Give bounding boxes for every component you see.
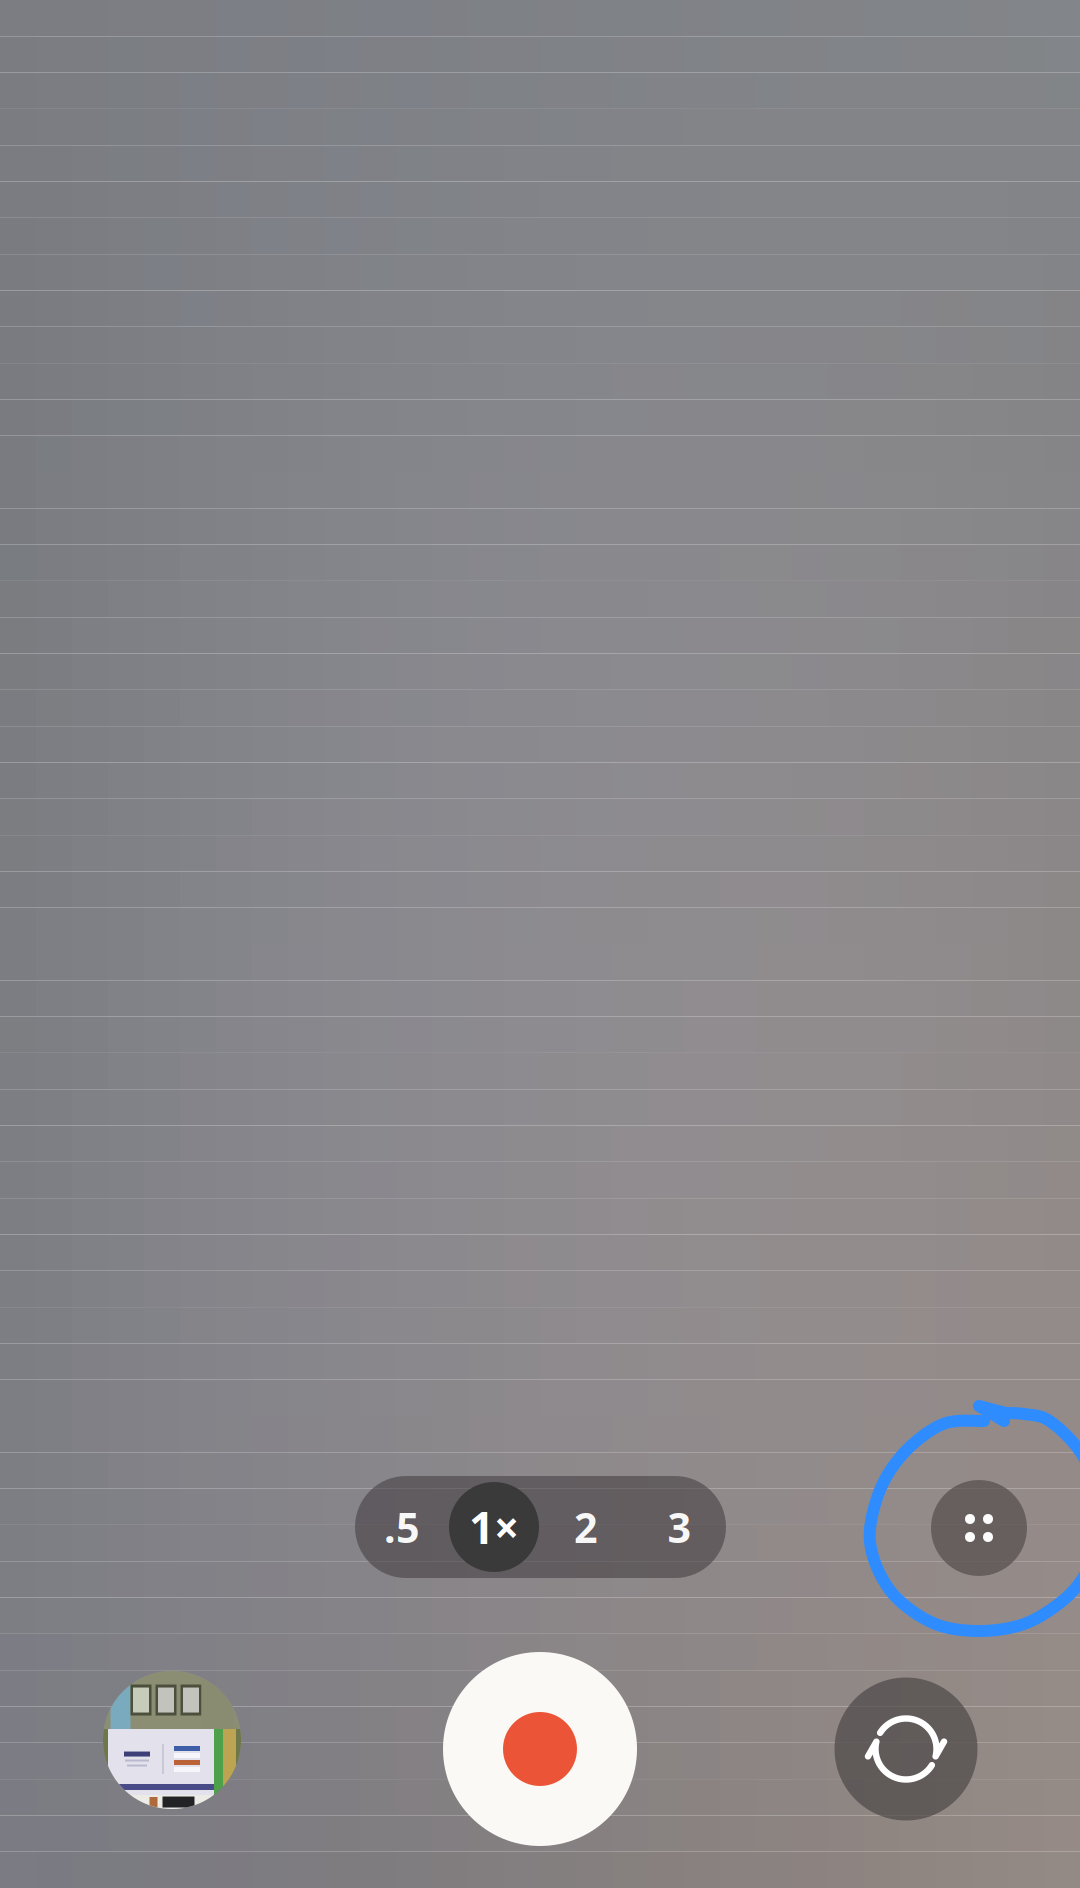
button[interactable]: Record video [443, 1652, 637, 1846]
staticText: .5 [384, 1500, 420, 1554]
staticText: 3 [667, 1500, 691, 1554]
button[interactable]: More camera options [931, 1480, 1027, 1576]
staticText: 1× [469, 1498, 519, 1556]
button[interactable]: Switch camera [834, 1677, 977, 1820]
button[interactable]: .5 [355, 1476, 726, 1578]
button[interactable]: Open last capture [103, 1671, 241, 1809]
staticText: 2 [574, 1500, 598, 1554]
